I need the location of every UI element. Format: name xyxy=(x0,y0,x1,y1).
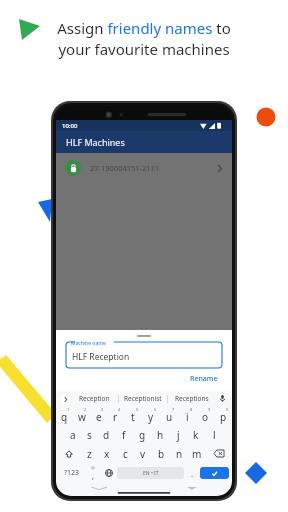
button[interactable]: EN • IT xyxy=(117,467,184,479)
staticText: 1 xyxy=(67,407,70,412)
staticText: h xyxy=(157,428,164,442)
staticText: Machine name xyxy=(71,340,106,347)
button[interactable]: Rename xyxy=(186,372,222,386)
button[interactable]: Enter xyxy=(200,467,229,479)
staticText: 7 xyxy=(172,407,175,412)
button[interactable]: k xyxy=(187,425,205,444)
staticText: r xyxy=(113,410,118,424)
button[interactable]: Shift xyxy=(56,444,81,463)
button[interactable]: 2 xyxy=(73,406,90,425)
button[interactable]: Receptions xyxy=(168,391,216,406)
button[interactable]: 3 xyxy=(90,406,107,425)
staticText: o xyxy=(202,410,209,424)
button[interactable]: 5 xyxy=(124,406,142,425)
button[interactable]: 4 xyxy=(107,406,124,425)
staticText: a xyxy=(70,428,76,442)
staticText: b xyxy=(158,447,165,461)
staticText: y xyxy=(148,410,154,424)
button[interactable]: 9 xyxy=(196,406,214,425)
staticText: i xyxy=(186,410,189,424)
button[interactable]: 27-190004151-2111 xyxy=(56,153,232,183)
staticText: t xyxy=(131,410,135,424)
staticText: 10:00 xyxy=(62,122,78,130)
button[interactable]: f xyxy=(115,425,133,444)
button[interactable]: Change language xyxy=(101,463,117,483)
staticText: 8 xyxy=(190,407,193,412)
staticText: HLF Machines xyxy=(66,136,125,148)
button[interactable]: j xyxy=(169,425,187,444)
staticText: f xyxy=(122,428,126,442)
staticText: 6 xyxy=(154,407,157,412)
staticText: 4 xyxy=(118,407,121,412)
button[interactable]: z xyxy=(81,444,98,463)
button[interactable]: b xyxy=(152,444,170,463)
button[interactable]: Reception xyxy=(70,391,118,406)
staticText: u xyxy=(166,410,173,424)
staticText: . xyxy=(191,468,194,479)
staticText: , xyxy=(92,470,95,481)
staticText: 2 xyxy=(84,407,87,412)
button[interactable]: s xyxy=(81,425,98,444)
button[interactable]: g xyxy=(133,425,151,444)
staticText: g xyxy=(139,428,146,442)
button[interactable]: Receptionist xyxy=(119,391,167,406)
staticText: 5 xyxy=(136,407,139,412)
button[interactable]: n xyxy=(170,444,188,463)
staticText: HLF Reception xyxy=(72,351,130,363)
button[interactable]: 1 xyxy=(56,406,73,425)
button[interactable]: HLF Machines xyxy=(56,131,232,153)
staticText: 0 xyxy=(226,407,229,412)
button[interactable]: . xyxy=(184,463,200,483)
staticText: v xyxy=(140,447,146,461)
staticText: 3 xyxy=(101,407,104,412)
staticText: x xyxy=(104,447,110,461)
button[interactable]: ☺ xyxy=(85,463,101,483)
button[interactable]: c xyxy=(116,444,134,463)
button[interactable]: 7 xyxy=(160,406,178,425)
button[interactable]: l xyxy=(205,425,223,444)
staticText: q xyxy=(61,410,68,424)
staticText: Receptions xyxy=(175,394,209,403)
staticText: Receptionist xyxy=(124,394,162,403)
staticText: n xyxy=(176,447,183,461)
button[interactable]: Voice input xyxy=(216,391,228,406)
staticText: Reception xyxy=(79,394,110,403)
staticText: c xyxy=(123,447,128,461)
staticText: ☺ xyxy=(91,465,96,470)
button[interactable]: 6 xyxy=(142,406,160,425)
button[interactable]: Backspace xyxy=(206,444,232,463)
button[interactable]: ?123 xyxy=(59,463,85,483)
staticText: s xyxy=(87,428,92,442)
button[interactable]: 8 xyxy=(178,406,196,425)
staticText: e xyxy=(96,410,102,424)
button[interactable]: a xyxy=(64,425,81,444)
button[interactable]: Expand suggestions xyxy=(60,394,70,404)
staticText: d xyxy=(103,428,110,442)
staticText: EN • IT xyxy=(143,470,159,477)
button[interactable]: x xyxy=(98,444,116,463)
staticText: p xyxy=(220,410,227,424)
staticText: j xyxy=(177,428,180,442)
button[interactable]: d xyxy=(98,425,115,444)
button[interactable]: h xyxy=(151,425,169,444)
staticText: l xyxy=(213,428,216,442)
staticText: m xyxy=(192,447,202,461)
staticText: ?123 xyxy=(64,468,80,478)
button[interactable]: v xyxy=(134,444,152,463)
staticText: 27-190004151-2111 xyxy=(90,163,160,173)
staticText: 9 xyxy=(208,407,211,412)
button[interactable]: m xyxy=(188,444,206,463)
staticText: z xyxy=(87,447,92,461)
staticText: w xyxy=(78,410,86,424)
staticText: Assign friendly names to your favourite … xyxy=(14,18,274,60)
staticText: Rename xyxy=(190,374,218,384)
staticText: k xyxy=(193,428,199,442)
button[interactable]: 0 xyxy=(214,406,232,425)
